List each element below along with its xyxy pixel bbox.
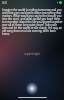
staticText: Imagine the world is ending tomorrow and…	[2, 8, 63, 36]
staticText: a quiet night	[24, 52, 40, 56]
button[interactable]: Home	[18, 97, 47, 98]
staticText: 9:41	[2, 1, 8, 5]
